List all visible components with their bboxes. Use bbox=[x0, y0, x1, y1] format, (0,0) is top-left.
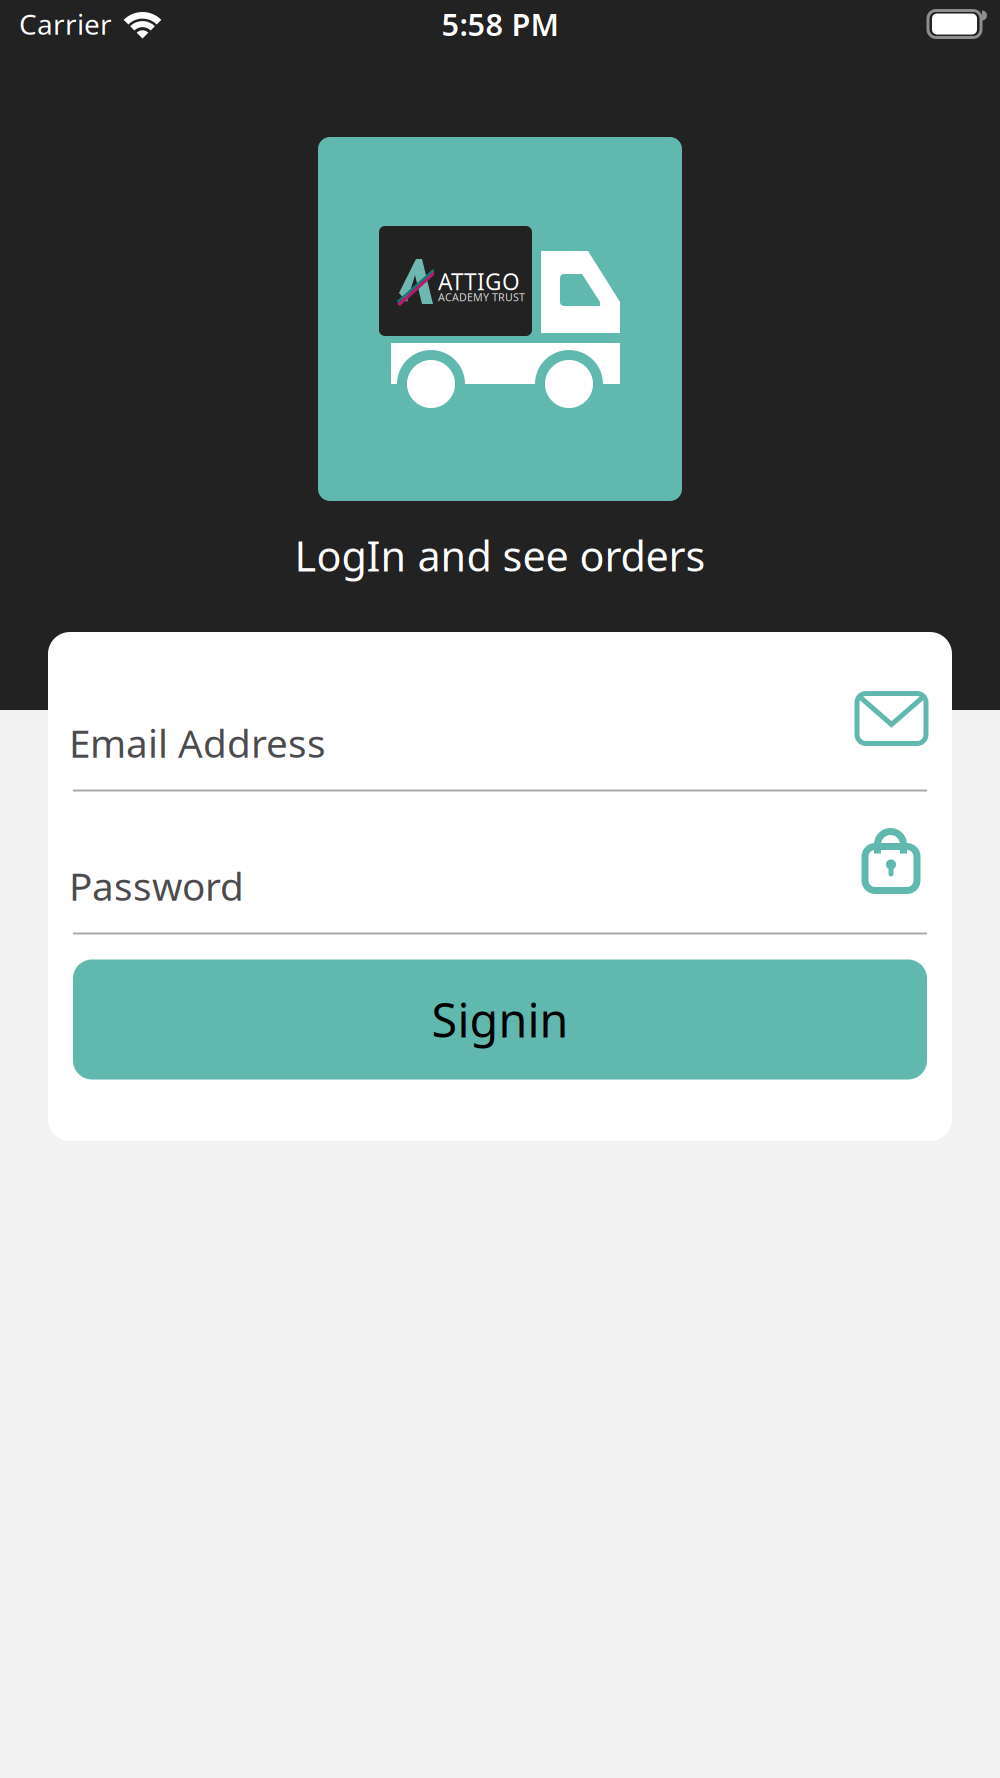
staticText: 5:58 PM bbox=[441, 4, 558, 44]
button[interactable]: Email Address bbox=[73, 672, 927, 791]
staticText: ATTIGO bbox=[438, 266, 520, 296]
staticText: Password bbox=[69, 860, 244, 911]
staticText: ACADEMY TRUST bbox=[438, 290, 525, 304]
button[interactable]: Password bbox=[73, 815, 927, 934]
staticText: Signin bbox=[431, 988, 568, 1050]
staticText: LogIn and see orders bbox=[294, 528, 705, 583]
button[interactable]: Signin bbox=[73, 959, 927, 1079]
staticText: Email Address bbox=[69, 717, 326, 768]
staticText: Carrier bbox=[19, 5, 112, 43]
